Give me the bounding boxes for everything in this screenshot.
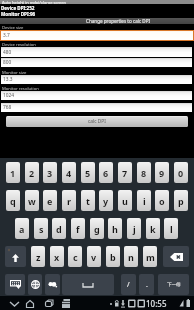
button[interactable]: Backspace	[163, 246, 189, 267]
staticText: .	[146, 280, 148, 290]
button[interactable]: m	[143, 246, 157, 267]
button[interactable]: h	[108, 218, 122, 239]
staticText: i	[143, 195, 146, 207]
staticText: w	[28, 195, 36, 207]
button[interactable]: 2	[25, 162, 39, 183]
button[interactable]: 1	[6, 162, 20, 183]
button[interactable]: a	[15, 218, 29, 239]
button[interactable]: q	[6, 190, 20, 211]
staticText: 480	[3, 49, 12, 56]
staticText: /	[127, 280, 130, 290]
staticText: 800	[3, 59, 12, 66]
button[interactable]: calc DPI	[6, 116, 188, 127]
button[interactable]: 8	[137, 162, 151, 183]
staticText: z	[36, 251, 41, 263]
staticText: t	[86, 195, 90, 207]
button[interactable]: Period	[139, 274, 154, 295]
staticText: o	[159, 195, 165, 207]
staticText: calc DPI	[88, 118, 106, 125]
staticText: a	[19, 223, 25, 235]
button[interactable]: k	[146, 218, 160, 239]
staticText: Monitor resolution	[2, 86, 39, 92]
button[interactable]: p	[174, 190, 188, 211]
button[interactable]: y	[99, 190, 113, 211]
button[interactable]: z	[31, 246, 45, 267]
button[interactable]: 800	[1, 58, 192, 67]
staticText: 3	[47, 167, 53, 179]
button[interactable]: 0	[174, 162, 188, 183]
button[interactable]: n	[124, 246, 138, 267]
staticText: e	[47, 195, 53, 207]
staticText: 768	[3, 104, 12, 111]
staticText: p	[178, 195, 184, 207]
button[interactable]: r	[62, 190, 76, 211]
staticText: u	[122, 195, 128, 207]
staticText: 2	[29, 167, 35, 179]
staticText: Monitor DPI:96	[1, 11, 36, 17]
button[interactable]: 7	[118, 162, 132, 183]
button[interactable]: Keyboard settings	[5, 274, 25, 295]
staticText: 5	[85, 167, 91, 179]
button[interactable]: w	[25, 190, 39, 211]
button[interactable]: g	[90, 218, 104, 239]
button[interactable]: 768	[1, 103, 192, 112]
staticText: s	[39, 223, 44, 235]
button[interactable]: x	[50, 246, 64, 267]
staticText: d	[56, 223, 62, 235]
staticText: v	[91, 251, 97, 263]
button[interactable]: Space	[62, 274, 114, 295]
staticText: 6	[103, 167, 109, 179]
button[interactable]: o	[155, 190, 169, 211]
staticText: 4	[66, 167, 72, 179]
staticText: 0	[178, 167, 184, 179]
staticText: Device DPI:252	[1, 5, 35, 11]
button[interactable]: t	[81, 190, 95, 211]
button[interactable]: Menu	[58, 298, 74, 309]
staticText: Change properties to calc DPI	[86, 18, 151, 24]
button[interactable]: Recent apps	[40, 298, 56, 309]
button[interactable]: s	[34, 218, 48, 239]
button[interactable]: 4	[62, 162, 76, 183]
button[interactable]: c	[68, 246, 82, 267]
staticText: 8	[141, 167, 147, 179]
staticText: j	[133, 223, 136, 235]
button[interactable]: b	[106, 246, 120, 267]
button[interactable]: Slash	[121, 274, 136, 295]
button[interactable]: Change language	[28, 274, 42, 295]
staticText: c	[73, 251, 78, 263]
staticText: 9	[159, 167, 165, 179]
button[interactable]: v	[87, 246, 101, 267]
button[interactable]: 6	[99, 162, 113, 183]
staticText: m	[146, 251, 155, 263]
button[interactable]: 3.7	[0, 30, 194, 41]
button[interactable]: 5	[81, 162, 95, 183]
button[interactable]: 13.3	[1, 75, 192, 84]
button[interactable]: u	[118, 190, 132, 211]
staticText: r	[67, 195, 72, 207]
button[interactable]: Shift	[5, 246, 26, 267]
button[interactable]: 1024	[1, 91, 192, 100]
staticText: 7	[122, 167, 128, 179]
button[interactable]: Next	[158, 274, 189, 295]
button[interactable]: Change properties to calc DPI	[0, 18, 194, 24]
staticText: x	[54, 251, 60, 263]
button[interactable]: j	[127, 218, 141, 239]
button[interactable]: 480	[1, 47, 192, 57]
staticText: 13.3	[3, 76, 13, 83]
staticText: Auto height in mdpi/xlarge screen	[2, 0, 66, 4]
button[interactable]: Emoji	[45, 274, 60, 295]
button[interactable]: d	[52, 218, 66, 239]
button[interactable]: i	[137, 190, 151, 211]
button[interactable]: e	[43, 190, 57, 211]
staticText: 10:55	[146, 298, 167, 309]
button[interactable]: 3	[43, 162, 57, 183]
staticText: k	[150, 223, 156, 235]
staticText: h	[112, 223, 118, 235]
staticText: q	[10, 195, 16, 207]
button[interactable]: Home	[22, 298, 38, 309]
button[interactable]: l	[164, 218, 178, 239]
staticText: b	[110, 251, 116, 263]
button[interactable]: f	[71, 218, 85, 239]
button[interactable]: 9	[155, 162, 169, 183]
button[interactable]: Hide keyboard	[6, 298, 22, 309]
